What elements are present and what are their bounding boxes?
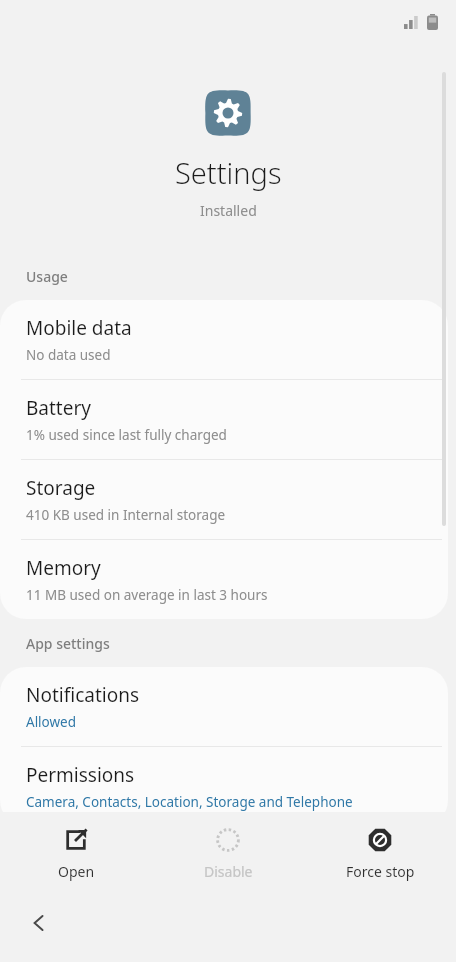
button[interactable]: Back bbox=[16, 900, 62, 946]
button[interactable]: Permissions bbox=[0, 747, 448, 826]
staticText: Allowed bbox=[26, 713, 77, 731]
button[interactable]: Force stop bbox=[304, 812, 456, 900]
staticText: Camera, Contacts, Location, Storage and … bbox=[26, 793, 353, 811]
button[interactable]: Mobile data bbox=[0, 300, 448, 379]
staticText: Battery bbox=[26, 395, 91, 421]
button[interactable]: Memory bbox=[0, 540, 448, 619]
staticText: 1% used since last fully charged bbox=[26, 426, 227, 444]
staticText: Notifications bbox=[26, 682, 140, 708]
staticText: Mobile data bbox=[26, 315, 132, 341]
button[interactable]: Open bbox=[0, 812, 152, 900]
button[interactable]: Battery bbox=[0, 380, 448, 459]
button[interactable]: Notifications bbox=[0, 667, 448, 746]
staticText: Disable bbox=[204, 862, 253, 881]
button[interactable]: Storage bbox=[0, 460, 448, 539]
staticText: No data used bbox=[26, 346, 111, 364]
staticText: Settings bbox=[175, 153, 282, 192]
staticText: Open bbox=[58, 862, 95, 881]
staticText: Force stop bbox=[346, 862, 415, 881]
staticText: Permissions bbox=[26, 762, 135, 788]
staticText: App settings bbox=[26, 634, 110, 653]
staticText: 11 MB used on average in last 3 hours bbox=[26, 586, 268, 604]
staticText: 410 KB used in Internal storage bbox=[26, 506, 226, 524]
staticText: Installed bbox=[200, 201, 257, 220]
staticText: Memory bbox=[26, 555, 101, 581]
staticText: Usage bbox=[26, 267, 68, 286]
button[interactable]: Disable bbox=[152, 812, 304, 900]
staticText: Storage bbox=[26, 475, 96, 501]
